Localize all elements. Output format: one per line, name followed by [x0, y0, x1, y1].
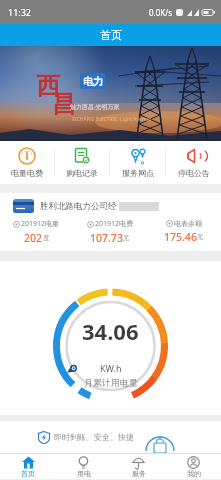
staticText: 201912电费 [95, 219, 134, 229]
staticText: 元 [123, 234, 130, 242]
button[interactable]: 34.06 [0, 261, 221, 415]
button[interactable]: 购电记录 [55, 141, 109, 184]
staticText: 175.46 [164, 230, 197, 244]
staticText: 胜利北路电力公司经 [40, 201, 117, 212]
staticText: 202 [24, 231, 43, 245]
staticText: 服务 [132, 469, 146, 478]
staticText: 电力 [83, 75, 103, 88]
button[interactable]: 停电公告 [166, 141, 221, 184]
staticText: 昌 [52, 89, 76, 119]
button[interactable]: 电量电费 [0, 141, 54, 184]
staticText: XICHANG ELECTRIC Light Avenue [72, 116, 151, 123]
staticText: 11:32 [8, 6, 32, 18]
staticText: 电表余额 [174, 219, 202, 228]
staticText: 服务网点 [122, 168, 154, 178]
staticText: KW.h [100, 362, 122, 374]
staticText: 电量电费 [11, 168, 43, 178]
button[interactable]: 胜利北路电力公司经 [0, 193, 221, 251]
staticText: 西 [36, 71, 60, 101]
staticText: 107.73 [90, 231, 123, 245]
staticText: 元 [197, 233, 204, 241]
button[interactable]: 即时到账、安全、快捷 [0, 421, 221, 453]
button[interactable]: 西 [0, 46, 221, 141]
button[interactable]: 服务 [111, 454, 166, 479]
button[interactable]: 首页 [0, 454, 56, 479]
staticText: 即时到账、安全、快捷 [54, 432, 134, 442]
button[interactable]: 用电 [56, 454, 111, 479]
staticText: 34.06 [82, 316, 139, 346]
staticText: 首页 [100, 28, 122, 42]
staticText: 月累计用电量 [84, 377, 138, 388]
staticText: 首页 [21, 469, 35, 478]
staticText: 201912电量 [21, 219, 60, 229]
staticText: 度 [43, 234, 50, 242]
staticText: 用电 [77, 469, 91, 478]
button[interactable]: 我的 [166, 454, 221, 479]
staticText: 我的 [187, 469, 201, 478]
staticText: 0.0K/s [149, 7, 173, 18]
staticText: 购电记录 [66, 168, 98, 178]
staticText: 魅力西昌·光明万家 [70, 103, 120, 111]
button[interactable]: 服务网点 [110, 141, 165, 184]
staticText: 停电公告 [178, 168, 210, 178]
